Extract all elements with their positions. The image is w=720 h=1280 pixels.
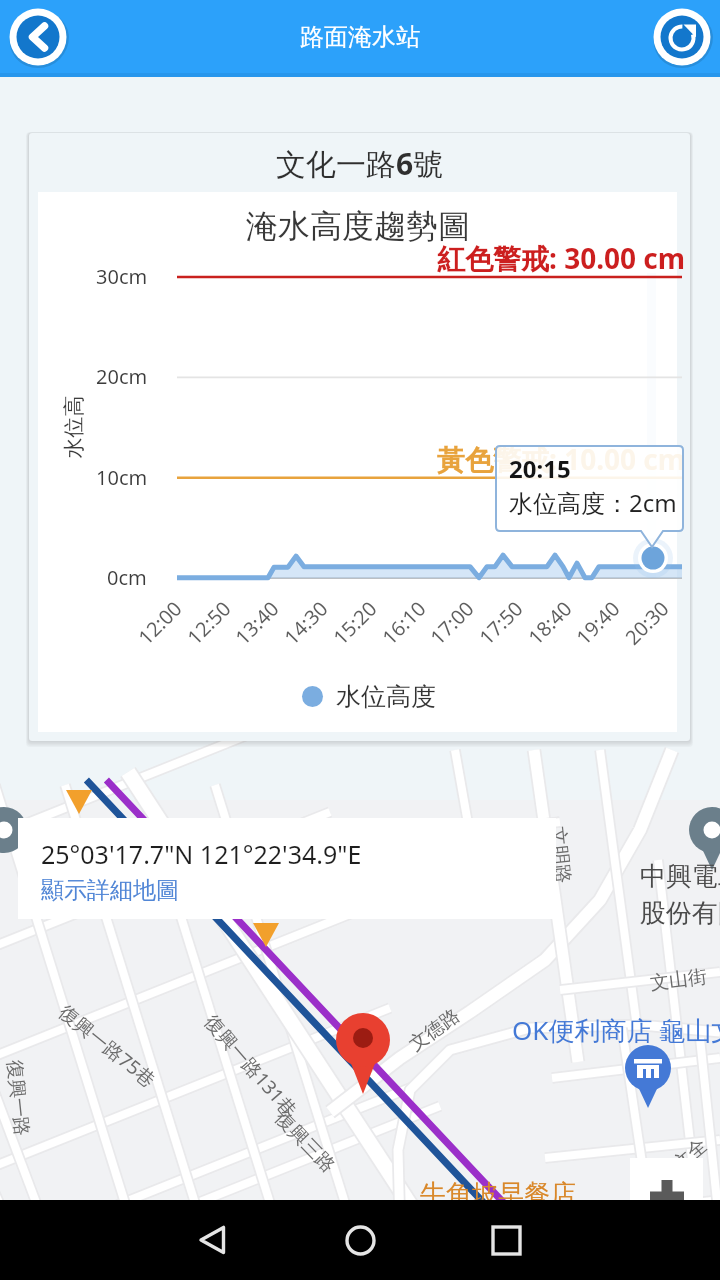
staticText: 文德路 <box>404 1003 465 1056</box>
staticText: 20:15 <box>509 452 571 485</box>
staticText: 0cm <box>107 564 147 591</box>
staticText: 17:00 <box>424 595 480 650</box>
staticText: 12:00 <box>132 595 188 650</box>
staticText: 13:40 <box>229 595 285 650</box>
staticText: 19:40 <box>570 595 626 650</box>
staticText: 黃色警戒: 10.00 cm <box>437 440 686 478</box>
staticText: 中興電工 <box>640 860 720 893</box>
staticText: 18:40 <box>522 595 578 650</box>
button[interactable]: Back <box>7 6 69 68</box>
staticText: 文化一路6號 <box>276 143 444 184</box>
button[interactable]: Home <box>326 1206 394 1274</box>
staticText: 文明路 <box>546 825 575 885</box>
staticText: 路面淹水站 <box>300 22 420 52</box>
staticText: 20cm <box>96 363 148 390</box>
button[interactable]: 25°03'17.7"N 121°22'34.9"E <box>18 818 556 919</box>
button[interactable]: Zoom in <box>630 1158 703 1200</box>
staticText: 復興一路75巷 <box>54 999 161 1093</box>
staticText: 12:50 <box>181 595 237 650</box>
button[interactable]: Refresh <box>651 6 713 68</box>
staticText: 14:30 <box>278 595 334 650</box>
staticText: 復興一路131巷 <box>199 1009 303 1123</box>
staticText: 15:20 <box>327 595 383 650</box>
staticText: 文全 <box>668 1134 712 1176</box>
staticText: 25°03'17.7"N 121°22'34.9"E <box>41 837 362 871</box>
staticText: 紅色警戒: 30.00 cm <box>437 239 686 277</box>
button[interactable]: Back <box>179 1206 247 1274</box>
staticText: 股份有限 <box>640 897 720 930</box>
staticText: 復興三路 <box>270 1106 340 1178</box>
staticText: 30cm <box>96 263 148 290</box>
staticText: 顯示詳細地圖 <box>41 876 179 905</box>
staticText: 水位高度 <box>336 681 436 712</box>
staticText: 文山街 <box>649 965 708 995</box>
staticText: 水位高度：2cm <box>509 486 677 519</box>
staticText: 復興一路 <box>2 1059 34 1137</box>
staticText: 20:30 <box>619 595 675 650</box>
button[interactable]: Recent apps <box>472 1206 540 1274</box>
staticText: 牛角坡早餐店 <box>420 1178 576 1211</box>
staticText: 10cm <box>96 464 148 491</box>
staticText: OK便利商店 龜山文 <box>512 1012 720 1048</box>
staticText: 16:10 <box>376 595 432 650</box>
staticText: 17:50 <box>473 595 529 650</box>
staticText: 水位高 <box>60 395 86 458</box>
staticText: 淹水高度趨勢圖 <box>246 206 470 246</box>
